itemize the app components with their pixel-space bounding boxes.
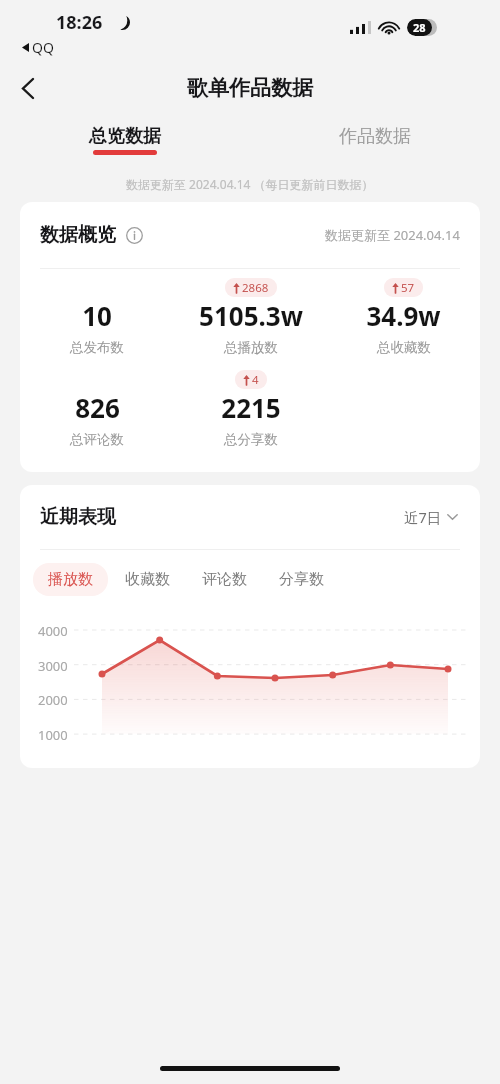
staticText: 5105.3w xyxy=(199,298,303,333)
staticText: 总收藏数 xyxy=(377,339,431,356)
button[interactable]: 收藏数 xyxy=(110,563,185,596)
button[interactable]: 近7日 xyxy=(402,503,460,531)
staticText: 数据更新至 2024.04.14 xyxy=(325,226,460,244)
button[interactable]: 评论数 xyxy=(187,563,262,596)
staticText: 3000 xyxy=(38,657,68,675)
staticText: 总分享数 xyxy=(224,431,278,448)
button[interactable]: Back xyxy=(8,68,48,108)
button[interactable]: Back to QQ xyxy=(18,36,58,59)
button[interactable]: 分享数 xyxy=(264,563,339,596)
button[interactable]: 总览数据 xyxy=(0,114,250,166)
staticText: 总览数据 xyxy=(89,125,161,148)
staticText: 歌单作品数据 xyxy=(187,75,313,101)
staticText: 分享数 xyxy=(279,570,324,589)
staticText: 数据概览 xyxy=(40,223,116,247)
staticText: 播放数 xyxy=(48,570,93,589)
staticText: 826 xyxy=(75,390,120,425)
staticText: QQ xyxy=(32,38,54,57)
staticText: 近7日 xyxy=(404,507,442,527)
staticText: 10 xyxy=(82,298,112,333)
staticText: 34.9w xyxy=(366,298,441,333)
staticText: 总播放数 xyxy=(224,339,278,356)
staticText: 作品数据 xyxy=(339,125,411,148)
staticText: 2215 xyxy=(221,390,281,425)
staticText: 数据更新至 2024.04.14 （每日更新前日数据） xyxy=(126,176,374,192)
staticText: 2868 xyxy=(242,280,269,295)
staticText: 4000 xyxy=(38,622,68,640)
staticText: 近期表现 xyxy=(40,505,116,529)
staticText: 总发布数 xyxy=(70,339,124,356)
staticText: 收藏数 xyxy=(125,570,170,589)
staticText: 4 xyxy=(252,372,259,387)
staticText: 28 xyxy=(413,20,426,35)
staticText: 评论数 xyxy=(202,570,247,589)
button[interactable]: 作品数据 xyxy=(250,114,500,166)
staticText: 57 xyxy=(401,280,415,295)
staticText: 2000 xyxy=(38,691,68,709)
staticText: 18:26 xyxy=(56,10,103,35)
staticText: 总评论数 xyxy=(70,431,124,448)
button[interactable]: Info xyxy=(124,225,144,245)
button[interactable]: 播放数 xyxy=(33,563,108,596)
staticText: 1000 xyxy=(38,726,68,744)
